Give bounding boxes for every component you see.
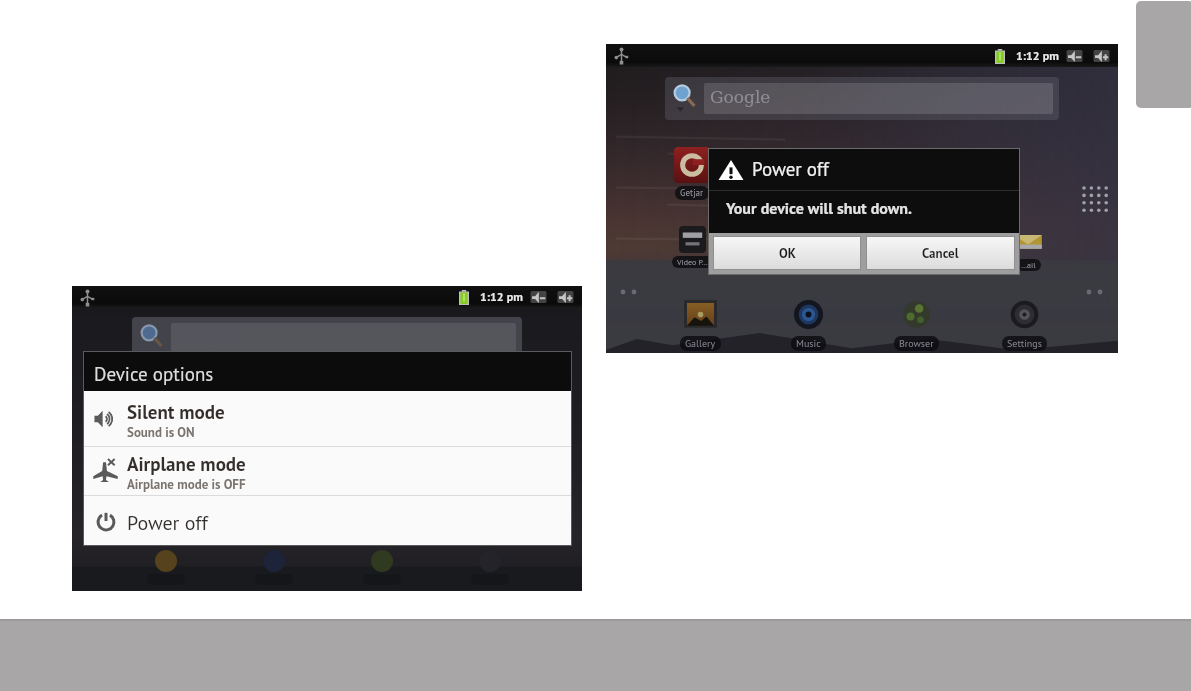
- staticText: Music: [796, 337, 821, 350]
- staticText: 1:12 pm: [1016, 48, 1059, 64]
- staticText: Settings: [1007, 337, 1042, 350]
- button[interactable]: Video P…: [664, 226, 720, 268]
- button[interactable]: All apps: [1080, 184, 1111, 215]
- staticText: 1:12 pm: [480, 289, 523, 305]
- other: Volume up: [557, 290, 574, 305]
- button[interactable]: Settings: [454, 549, 526, 585]
- staticText: Airplane mode: [127, 452, 246, 477]
- staticText: Browser: [899, 337, 934, 350]
- other: Volume down: [530, 290, 547, 305]
- staticText: Gallery: [685, 337, 716, 350]
- other: Volume up: [1093, 49, 1110, 64]
- button[interactable]: Music: [772, 298, 844, 351]
- staticText: Cancel: [922, 245, 959, 262]
- button[interactable]: Gallery: [130, 549, 202, 585]
- other: Volume down: [1066, 49, 1083, 64]
- staticText: Power off: [752, 157, 829, 182]
- staticText: Sound is ON: [127, 424, 195, 441]
- staticText: Google: [710, 87, 771, 107]
- button[interactable]: Getjar: [664, 147, 720, 200]
- staticText: Device options: [94, 362, 214, 387]
- button[interactable]: OK: [714, 237, 860, 269]
- button[interactable]: Airplane mode: [84, 447, 571, 495]
- button[interactable]: Google: [665, 77, 1059, 120]
- staticText: Airplane mode is OFF: [127, 476, 246, 493]
- staticText: Silent mode: [127, 400, 225, 425]
- button[interactable]: Silent mode: [84, 391, 571, 446]
- button[interactable]: Cancel: [867, 237, 1014, 269]
- staticText: Your device will shut down.: [726, 198, 913, 219]
- button[interactable]: Browser: [346, 549, 418, 585]
- button[interactable]: …ail: [1000, 226, 1056, 271]
- staticText: Video P…: [677, 257, 708, 267]
- button[interactable]: Power off: [84, 496, 571, 545]
- button[interactable]: Browser: [880, 298, 952, 351]
- staticText: …ail: [1021, 260, 1036, 270]
- staticText: Power off: [127, 510, 208, 536]
- staticText: Getjar: [680, 187, 704, 199]
- staticText: OK: [779, 245, 796, 262]
- button[interactable]: Gallery: [664, 298, 736, 351]
- button[interactable]: Settings: [988, 298, 1060, 351]
- button[interactable]: Music: [238, 549, 310, 585]
